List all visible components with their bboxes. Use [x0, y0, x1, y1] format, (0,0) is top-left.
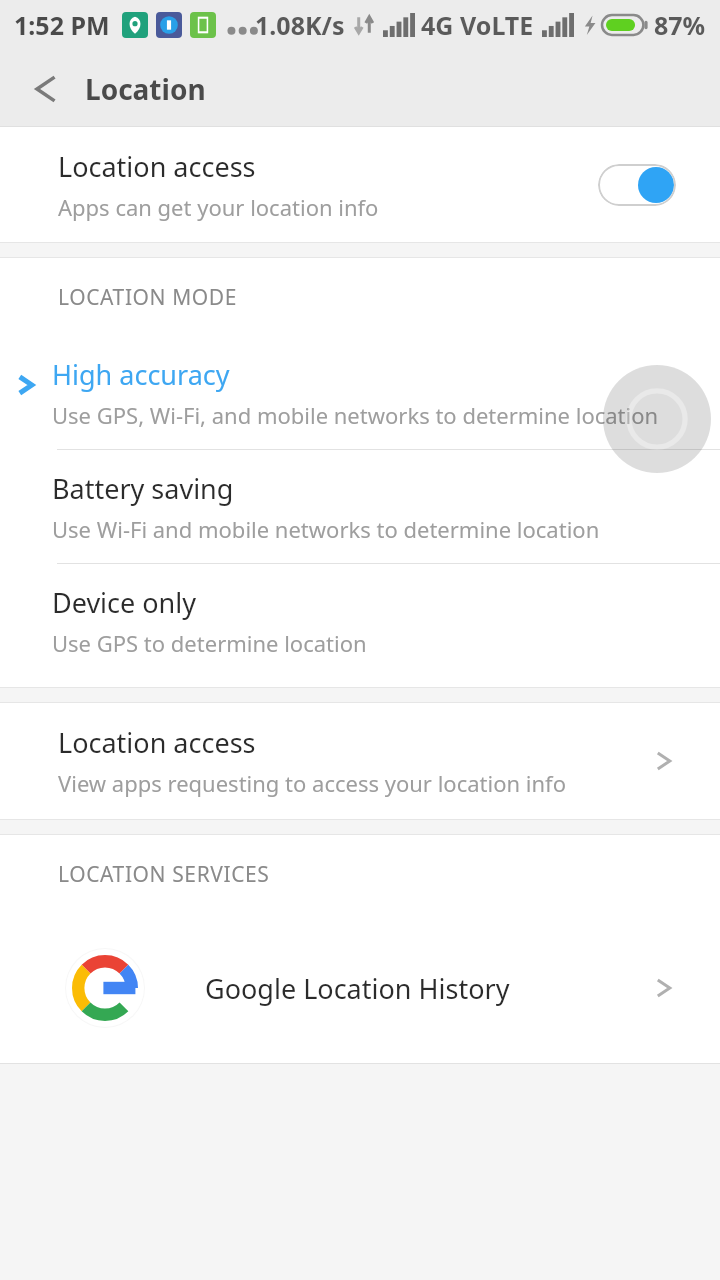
- staticText: Location: [85, 70, 206, 108]
- staticText: Device only: [52, 584, 197, 621]
- button[interactable]: Back: [22, 67, 66, 111]
- staticText: Apps can get your location info: [58, 192, 379, 222]
- staticText: 4G: [421, 8, 454, 42]
- staticText: Location access: [58, 724, 256, 761]
- staticText: VoLTE: [460, 8, 534, 42]
- button[interactable]: Battery saving: [0, 450, 720, 563]
- staticText: View apps requesting to access your loca…: [58, 768, 566, 798]
- staticText: LOCATION SERVICES: [58, 860, 270, 889]
- staticText: 1:52 PM: [14, 8, 110, 42]
- button[interactable]: Location access: [0, 703, 720, 819]
- staticText: Use GPS to determine location: [52, 628, 367, 658]
- button[interactable]: Location access: [0, 127, 720, 242]
- staticText: 1.08K/s: [255, 8, 345, 42]
- button[interactable]: Location access toggle, on: [598, 164, 676, 206]
- staticText: Google Location History: [205, 970, 510, 1007]
- staticText: Use Wi-Fi and mobile networks to determi…: [52, 514, 600, 544]
- button[interactable]: High accuracy: [0, 336, 720, 449]
- staticText: LOCATION MODE: [58, 283, 238, 312]
- button[interactable]: Google Location History: [0, 913, 720, 1063]
- button[interactable]: Device only: [0, 564, 720, 677]
- staticText: Location access: [58, 148, 256, 185]
- staticText: Use GPS, Wi-Fi, and mobile networks to d…: [52, 400, 659, 430]
- staticText: 87%: [654, 8, 706, 42]
- staticText: High accuracy: [52, 356, 230, 393]
- staticText: Battery saving: [52, 470, 234, 507]
